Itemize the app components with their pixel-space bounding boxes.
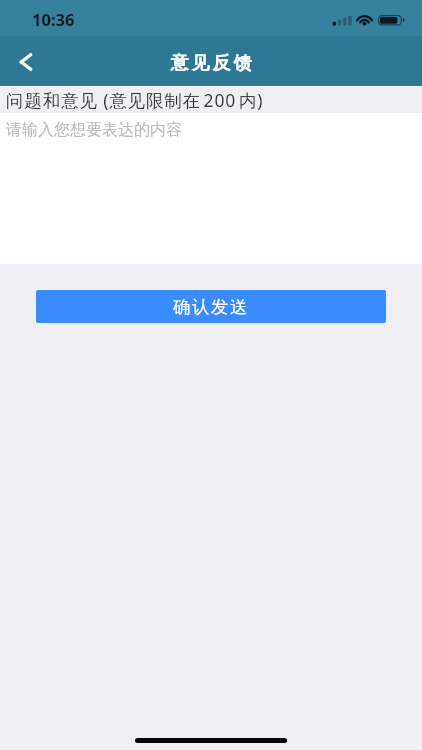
staticText: 10:36 — [32, 8, 75, 30]
staticText: 意见反馈 — [169, 52, 253, 75]
button[interactable]: Back — [4, 40, 48, 84]
button[interactable]: 确认发送 — [36, 290, 386, 323]
staticText: 请输入您想要表达的内容 — [6, 120, 182, 140]
button[interactable]: 请输入您想要表达的内容 — [0, 113, 422, 264]
staticText: 确认发送 — [173, 296, 249, 318]
staticText: 问题和意见 (意见限制在 200 内) — [6, 88, 264, 112]
